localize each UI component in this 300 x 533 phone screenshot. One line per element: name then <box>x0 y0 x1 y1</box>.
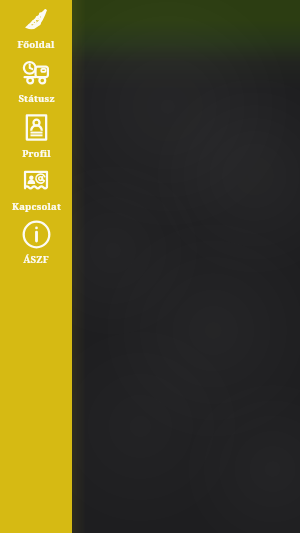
staticText: Profil <box>22 147 51 160</box>
staticText: Főoldal <box>17 38 55 51</box>
staticText: ÁSZF <box>23 253 49 266</box>
staticText: Kapcsolat <box>12 200 61 213</box>
button[interactable]: Főoldal <box>0 0 72 51</box>
button[interactable]: Státusz <box>0 51 72 105</box>
staticText: Státusz <box>18 92 55 105</box>
button[interactable]: Profil <box>0 105 72 160</box>
button[interactable]: ÁSZF <box>0 213 72 266</box>
button[interactable]: Kapcsolat <box>0 160 72 213</box>
